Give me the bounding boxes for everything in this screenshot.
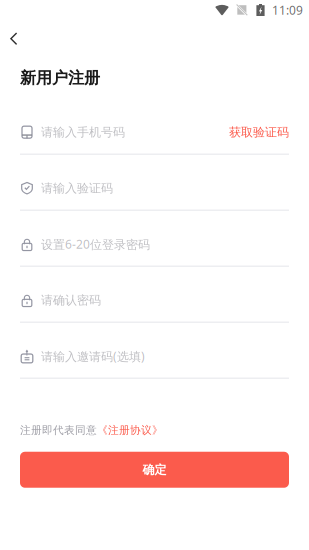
button[interactable]: 获取验证码 [229,125,289,139]
staticText: 请确认密码 [41,293,101,307]
staticText: 设置6-20位登录密码 [41,236,150,252]
staticText: 注册即代表同意 [20,424,97,437]
staticText: 新用户注册 [20,68,100,88]
staticText: 11:09 [272,2,303,18]
staticText: 请输入邀请码(选填) [41,348,145,364]
staticText: 获取验证码 [229,125,289,139]
button[interactable]: 《注册协议》 [97,424,163,437]
staticText: 确定 [142,462,166,477]
staticText: 《注册协议》 [97,424,163,437]
staticText: 请输入验证码 [41,181,113,195]
staticText: 请输入手机号码 [41,125,125,139]
button[interactable]: Back [1,25,27,53]
button[interactable]: 确定 [20,452,289,488]
